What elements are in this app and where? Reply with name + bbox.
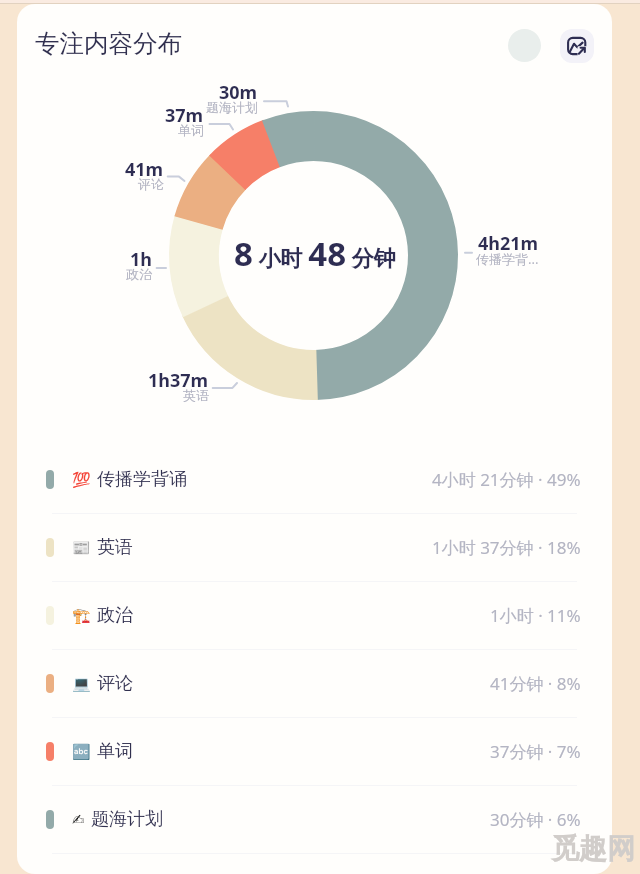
- staticText: 4小时 21分钟 · 49%: [432, 468, 581, 491]
- staticText: 1小时 37分钟 · 18%: [432, 536, 581, 559]
- staticText: 觅趣网: [551, 831, 635, 866]
- staticText: 政治: [97, 604, 133, 627]
- staticText: 💯: [72, 471, 91, 489]
- button[interactable]: Share chart: [560, 29, 594, 63]
- staticText: 🏗️: [72, 607, 91, 625]
- staticText: 单词: [178, 122, 204, 138]
- button[interactable]: 💯: [17, 446, 612, 513]
- button[interactable]: 📰: [17, 514, 612, 581]
- button[interactable]: 🏗️: [17, 582, 612, 649]
- staticText: 📰: [72, 539, 91, 557]
- staticText: 政治: [126, 266, 152, 282]
- staticText: 评论: [97, 672, 133, 695]
- button[interactable]: User avatar: [508, 29, 541, 62]
- staticText: 英语: [97, 536, 133, 559]
- staticText: 评论: [138, 176, 164, 192]
- button[interactable]: 💻: [17, 650, 612, 717]
- staticText: ✍️: [72, 811, 85, 828]
- staticText: 题海计划: [91, 808, 163, 831]
- staticText: 单词: [97, 740, 133, 763]
- staticText: 1h37m: [148, 368, 209, 393]
- staticText: 💻: [72, 675, 91, 693]
- staticText: 传播学背...: [476, 250, 539, 268]
- button[interactable]: ✍️: [17, 786, 612, 853]
- staticText: 英语: [183, 387, 209, 403]
- button[interactable]: 🔤: [17, 718, 612, 785]
- staticText: 传播学背诵: [97, 468, 187, 491]
- staticText: 41m: [125, 157, 164, 182]
- staticText: 30m: [219, 80, 258, 105]
- staticText: 37分钟 · 7%: [490, 740, 581, 763]
- staticText: 🔤: [72, 743, 91, 761]
- staticText: 1h: [130, 247, 152, 272]
- staticText: 题海计划: [206, 99, 258, 115]
- staticText: 30分钟 · 6%: [490, 808, 581, 831]
- staticText: 8 小时 48 分钟: [234, 231, 396, 276]
- staticText: 1小时 · 11%: [490, 604, 581, 627]
- staticText: 4h21m: [478, 231, 539, 256]
- staticText: 41分钟 · 8%: [490, 672, 581, 695]
- staticText: 37m: [165, 103, 204, 128]
- staticText: 专注内容分布: [35, 28, 182, 59]
